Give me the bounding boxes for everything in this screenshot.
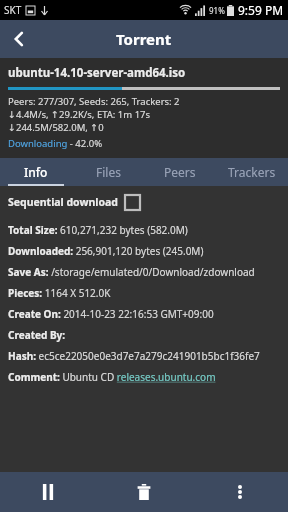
staticText: Info: [24, 164, 48, 180]
button[interactable]: Sequential download: [8, 192, 140, 212]
staticText: ↓244.5M/582.0M, ↑0: [8, 121, 104, 134]
staticText: Hash: ec5ce22050e0e3d7e7a279c241901b5bc1…: [8, 349, 260, 363]
button[interactable]: Info: [0, 158, 72, 186]
staticText: Peers: [164, 164, 196, 180]
staticText: 91%: [209, 5, 225, 16]
staticText: Downloaded: 256,901,120 bytes (245.0M): [8, 244, 204, 258]
staticText: Total Size: 610,271,232 bytes (582.0M): [8, 223, 188, 237]
button[interactable]: Peers: [144, 158, 216, 186]
staticText: Trackers: [228, 164, 276, 180]
button[interactable]: More options: [192, 472, 288, 512]
staticText: Torrent: [116, 29, 172, 49]
staticText: Downloading - 42.0%: [8, 137, 103, 150]
staticText: Peers: 277/307, Seeds: 265, Trackers: 2: [8, 95, 180, 108]
staticText: ubuntu-14.10-server-amd64.iso: [8, 65, 186, 81]
staticText: ↓4.4M/s, ↑29.2K/s, ETA: 1m 17s: [8, 108, 151, 121]
button[interactable]: Pause: [0, 472, 96, 512]
staticText: Save As: /storage/emulated/0/Download/zd…: [8, 265, 255, 279]
button[interactable]: Delete: [96, 472, 192, 512]
staticText: Comment: Ubuntu CD releases.ubuntu.com: [8, 370, 216, 384]
staticText: Pieces: 1164 X 512.0K: [8, 286, 111, 300]
staticText: 9:59 PM: [238, 2, 284, 18]
staticText: Create On: 2014-10-23 22:16:53 GMT+09:00: [8, 307, 214, 321]
staticText: SKT: [4, 3, 22, 17]
staticText: Files: [96, 164, 121, 180]
staticText: Sequential download: [8, 195, 118, 209]
button[interactable]: Files: [72, 158, 144, 186]
button[interactable]: Trackers: [216, 158, 288, 186]
staticText: Created By:: [8, 328, 68, 342]
button[interactable]: ubuntu-14.10-server-amd64.iso: [8, 58, 280, 158]
button[interactable]: Back: [0, 20, 38, 58]
